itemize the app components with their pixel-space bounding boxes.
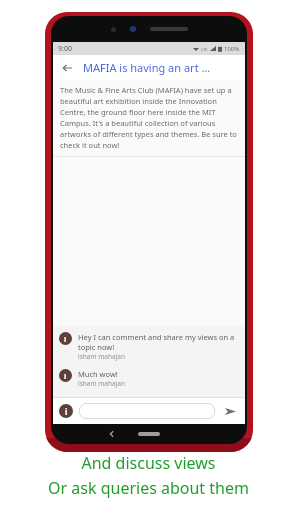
staticText: isham mahajan <box>78 379 125 388</box>
button[interactable]: i <box>53 367 245 390</box>
button[interactable] <box>79 403 215 419</box>
button[interactable]: Send <box>221 402 239 420</box>
staticText: isham mahajan <box>78 352 125 361</box>
staticText: i <box>65 406 68 417</box>
staticText: Hey I can comment and share my views on … <box>78 332 237 352</box>
staticText: MAFIA is having an art … <box>83 60 211 75</box>
staticText: Or ask queries about them <box>48 477 249 499</box>
other: Back <box>107 429 117 439</box>
staticText: Much wow! <box>78 369 118 379</box>
staticText: 9:00 <box>58 44 72 54</box>
staticText: i <box>64 371 67 381</box>
staticText: i <box>64 334 67 344</box>
staticText: 100% <box>224 45 240 53</box>
other: Home <box>138 432 160 436</box>
staticText: LTE <box>201 47 208 52</box>
button[interactable]: Back <box>59 60 75 76</box>
staticText: The Music & Fine Arts Club (MAFIA) have … <box>60 85 238 150</box>
button[interactable]: i <box>53 330 245 363</box>
staticText: And discuss views <box>81 452 216 474</box>
